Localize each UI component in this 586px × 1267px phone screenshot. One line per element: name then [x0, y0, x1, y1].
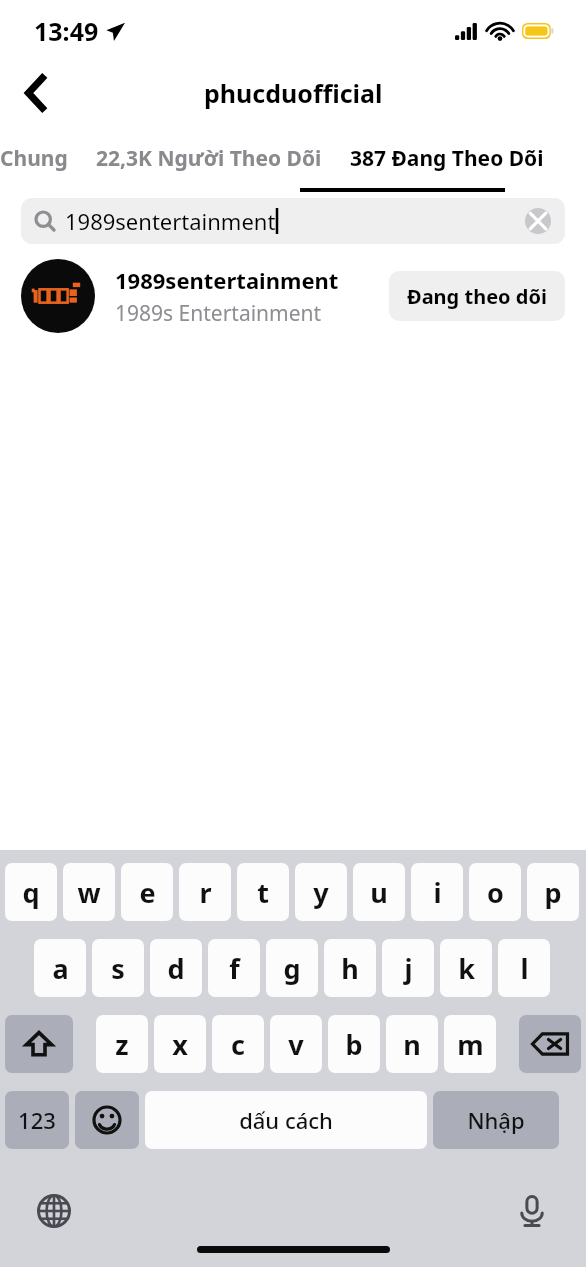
staticText: v: [288, 1026, 304, 1063]
staticText: t: [257, 874, 269, 911]
staticText: 22,3K Người Theo Dõi: [96, 144, 322, 173]
staticText: a: [52, 950, 69, 987]
staticText: d: [167, 950, 185, 987]
staticText: m: [457, 1026, 484, 1063]
staticText: 1989sentertainment: [65, 206, 276, 236]
staticText: f: [229, 950, 240, 987]
button[interactable]: d: [150, 939, 202, 997]
button[interactable]: u: [353, 863, 405, 921]
button[interactable]: i: [411, 863, 463, 921]
button[interactable]: o: [469, 863, 521, 921]
button[interactable]: Nhập: [433, 1091, 559, 1149]
button[interactable]: Emoji: [75, 1091, 139, 1149]
button[interactable]: y: [295, 863, 347, 921]
button[interactable]: w: [63, 863, 115, 921]
button[interactable]: 22,3K Người Theo Dõi: [82, 124, 336, 192]
button[interactable]: z: [96, 1015, 148, 1073]
staticText: n: [403, 1026, 421, 1063]
button[interactable]: m: [444, 1015, 496, 1073]
button[interactable]: Shift: [5, 1015, 73, 1073]
staticText: o: [487, 874, 504, 911]
button[interactable]: Clear: [525, 208, 551, 234]
staticText: phucduofficial: [204, 76, 383, 110]
button[interactable]: 123: [5, 1091, 69, 1149]
staticText: c: [231, 1026, 245, 1063]
button[interactable]: 387 Đang Theo Dõi: [336, 124, 558, 192]
button[interactable]: Delete: [519, 1015, 581, 1073]
staticText: Nhập: [467, 1105, 525, 1135]
button[interactable]: v: [270, 1015, 322, 1073]
button[interactable]: f: [208, 939, 260, 997]
staticText: w: [77, 874, 101, 911]
button[interactable]: e: [121, 863, 173, 921]
staticText: g: [283, 950, 301, 987]
button[interactable]: q: [5, 863, 57, 921]
staticText: h: [341, 950, 359, 987]
staticText: e: [139, 874, 156, 911]
button[interactable]: h: [324, 939, 376, 997]
button[interactable]: Change keyboard: [32, 1189, 76, 1233]
button[interactable]: Back: [10, 67, 62, 119]
staticText: l: [520, 950, 529, 987]
staticText: z: [115, 1026, 129, 1063]
staticText: dấu cách: [239, 1105, 333, 1135]
button[interactable]: l: [498, 939, 550, 997]
staticText: r: [199, 874, 212, 911]
button[interactable]: Chung: [0, 124, 82, 192]
button[interactable]: r: [179, 863, 231, 921]
staticText: y: [313, 874, 329, 911]
staticText: 387 Đang Theo Dõi: [350, 144, 544, 173]
button[interactable]: n: [386, 1015, 438, 1073]
staticText: Chung: [0, 144, 68, 173]
button[interactable]: t: [237, 863, 289, 921]
staticText: 13:49: [34, 14, 99, 48]
button[interactable]: j: [382, 939, 434, 997]
staticText: b: [345, 1026, 363, 1063]
staticText: 1989s Entertainment: [115, 299, 322, 328]
staticText: p: [544, 874, 562, 911]
button[interactable]: b: [328, 1015, 380, 1073]
button[interactable]: a: [34, 939, 86, 997]
button[interactable]: g: [266, 939, 318, 997]
staticText: 1989sentertainment: [115, 265, 339, 295]
button[interactable]: Dictation: [510, 1189, 554, 1233]
button[interactable]: p: [527, 863, 579, 921]
staticText: j: [404, 950, 413, 987]
button[interactable]: 1989sentertainment: [21, 250, 565, 342]
staticText: k: [458, 950, 475, 987]
button[interactable]: Đang theo dõi: [389, 271, 565, 321]
button[interactable]: k: [440, 939, 492, 997]
button[interactable]: 1989sentertainment: [21, 198, 565, 244]
staticText: s: [111, 950, 125, 987]
staticText: 123: [18, 1105, 56, 1135]
button[interactable]: s: [92, 939, 144, 997]
button[interactable]: dấu cách: [145, 1091, 427, 1149]
staticText: q: [22, 874, 40, 911]
staticText: x: [172, 1026, 188, 1063]
staticText: Đang theo dõi: [407, 283, 547, 310]
staticText: u: [370, 874, 388, 911]
button[interactable]: c: [212, 1015, 264, 1073]
staticText: i: [433, 874, 442, 911]
button[interactable]: x: [154, 1015, 206, 1073]
